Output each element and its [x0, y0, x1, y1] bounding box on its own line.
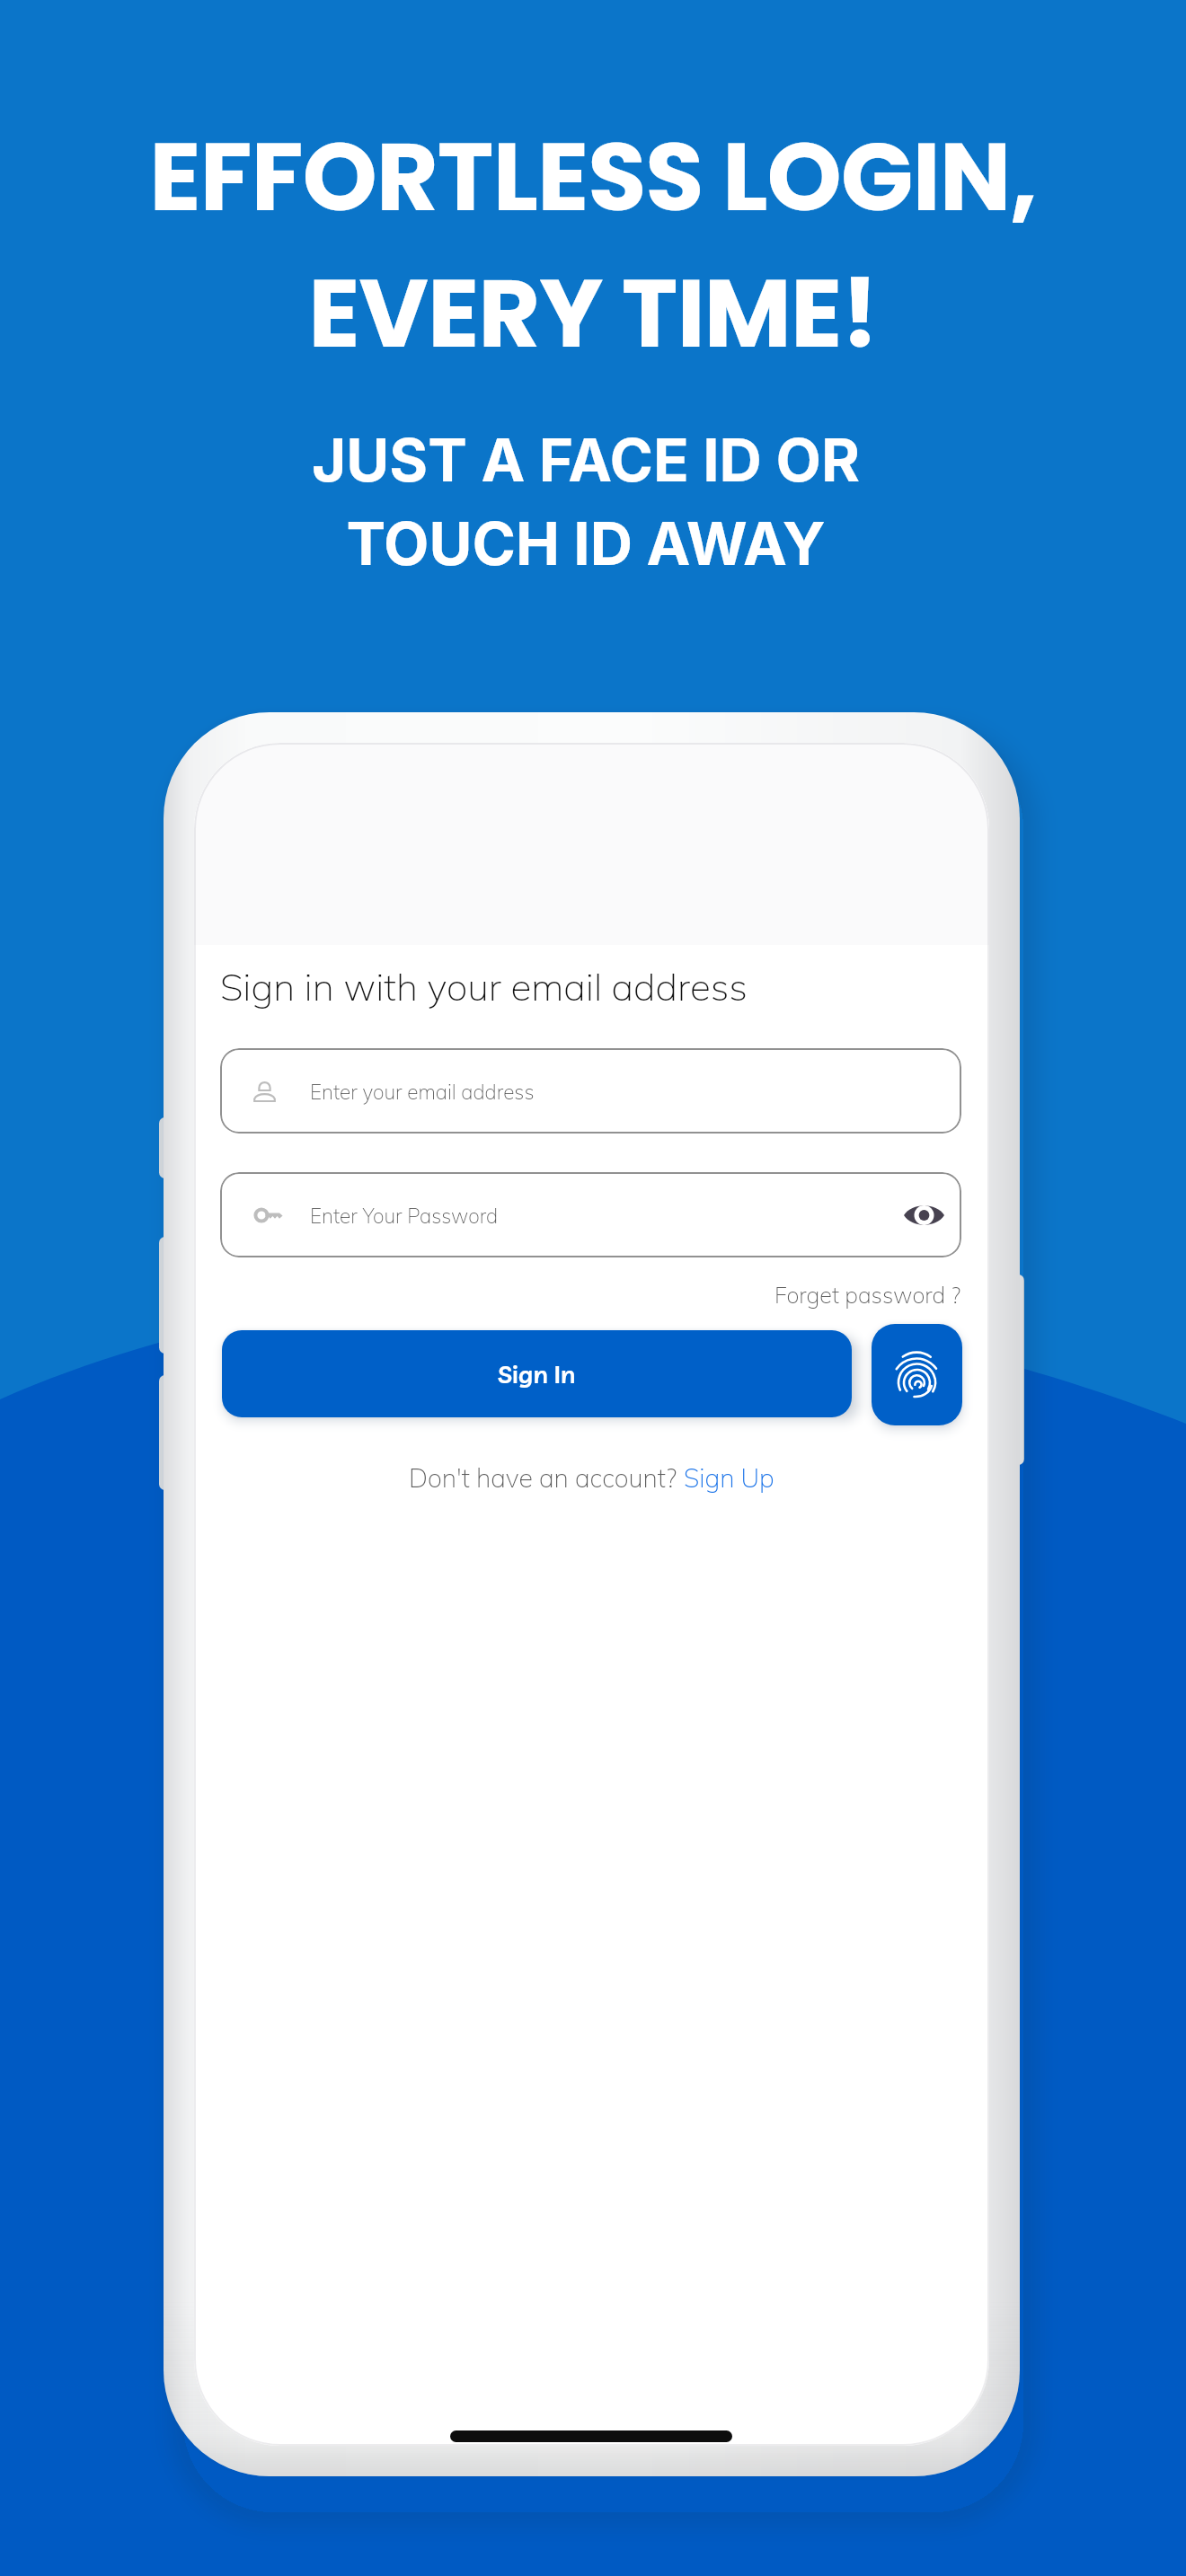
staticText: EFFORTLESS LOGIN, EVERY TIME! [0, 110, 1186, 380]
staticText: Enter Your Password [310, 1203, 499, 1228]
button[interactable]: Forget password ? [220, 1275, 961, 1316]
staticText: Sign Up [684, 1461, 774, 1494]
staticText: Sign in with your email address [220, 963, 748, 1010]
staticText: JUST A FACE ID OR TOUCH ID AWAY [0, 425, 1179, 578]
button[interactable]: Sign In [222, 1330, 852, 1417]
button[interactable]: Sign in with fingerprint [872, 1324, 962, 1425]
staticText: Enter your email address [310, 1079, 535, 1104]
button[interactable]: Show password [898, 1189, 950, 1241]
staticText: Forget password ? [774, 1281, 961, 1310]
staticText: Sign In [498, 1359, 576, 1389]
button[interactable]: Enter your email address [220, 1048, 961, 1134]
button[interactable]: Enter Your Password [220, 1172, 961, 1257]
staticText: Don't have an account? [409, 1461, 684, 1494]
button[interactable]: Sign Up [684, 1461, 774, 1494]
